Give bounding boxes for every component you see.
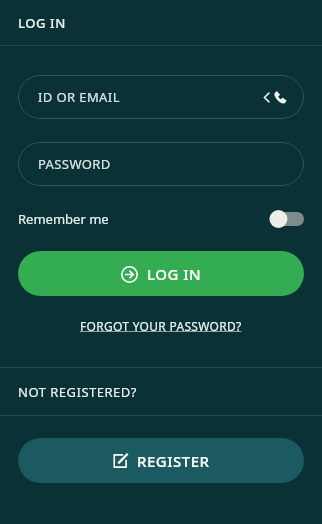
- staticText: ID OR EMAIL: [38, 88, 120, 106]
- button[interactable]: Remember me: [18, 202, 304, 236]
- button[interactable]: ID OR EMAIL: [18, 75, 304, 119]
- button[interactable]: LOG IN: [18, 251, 304, 296]
- staticText: FORGOT YOUR PASSWORD?: [80, 318, 242, 334]
- staticText: REGISTER: [137, 451, 210, 471]
- staticText: LOG IN: [18, 14, 66, 32]
- staticText: Remember me: [18, 210, 109, 228]
- staticText: LOG IN: [147, 264, 202, 284]
- staticText: NOT REGISTERED?: [18, 383, 137, 401]
- button[interactable]: PASSWORD: [18, 142, 304, 186]
- button[interactable]: Use phone number: [263, 90, 288, 105]
- button[interactable]: REGISTER: [18, 438, 304, 483]
- staticText: PASSWORD: [38, 155, 111, 173]
- button[interactable]: FORGOT YOUR PASSWORD?: [80, 318, 242, 334]
- button[interactable]: Remember me toggle: [268, 210, 304, 228]
